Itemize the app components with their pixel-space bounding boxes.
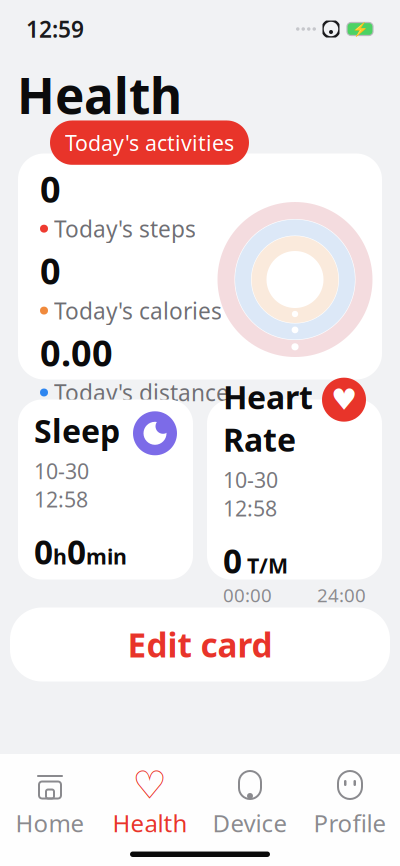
staticText: 0 xyxy=(67,529,86,574)
staticText: ♡ xyxy=(132,763,167,807)
staticText: ⚡ xyxy=(351,21,368,37)
staticText: Today's calories xyxy=(54,295,222,326)
staticText: Edit card xyxy=(127,622,272,667)
staticText: h xyxy=(53,542,67,570)
staticText: 0 xyxy=(223,538,242,583)
staticText: 12:59 xyxy=(26,14,84,44)
staticText: Today's distance xyxy=(54,377,229,407)
staticText: Sleep xyxy=(34,409,120,452)
staticText: 0 xyxy=(40,247,61,294)
button[interactable]: Heart Rate xyxy=(207,399,382,579)
staticText: 24:00 xyxy=(317,583,366,607)
staticText: Health xyxy=(112,807,187,839)
staticText: Profile xyxy=(313,807,386,839)
staticText: 0.00 xyxy=(40,329,113,376)
staticText: 10-30 12:58 xyxy=(34,457,89,513)
staticText: 0 xyxy=(40,165,61,213)
staticText: Health xyxy=(17,62,182,127)
staticText: T/M xyxy=(247,551,288,579)
button[interactable]: Profile xyxy=(300,768,400,841)
staticText: Heart Rate xyxy=(223,376,313,461)
staticText: Home xyxy=(15,807,84,839)
staticText: ♥ xyxy=(331,383,357,416)
staticText: 10-30 12:58 xyxy=(223,466,278,522)
button[interactable]: Edit card xyxy=(10,607,390,681)
staticText: 0 xyxy=(34,529,53,574)
staticText: min xyxy=(86,542,127,570)
staticText: Device xyxy=(212,807,287,839)
button[interactable]: Today's activities xyxy=(18,153,382,379)
staticText: 00:00 xyxy=(223,583,272,607)
staticText: Today's activities xyxy=(65,128,234,157)
button[interactable]: ♡ xyxy=(100,768,200,841)
button[interactable]: Device xyxy=(200,768,300,841)
button[interactable]: Home xyxy=(0,768,100,841)
button[interactable]: Sleep xyxy=(18,399,193,579)
staticText: Today's steps xyxy=(54,214,196,244)
